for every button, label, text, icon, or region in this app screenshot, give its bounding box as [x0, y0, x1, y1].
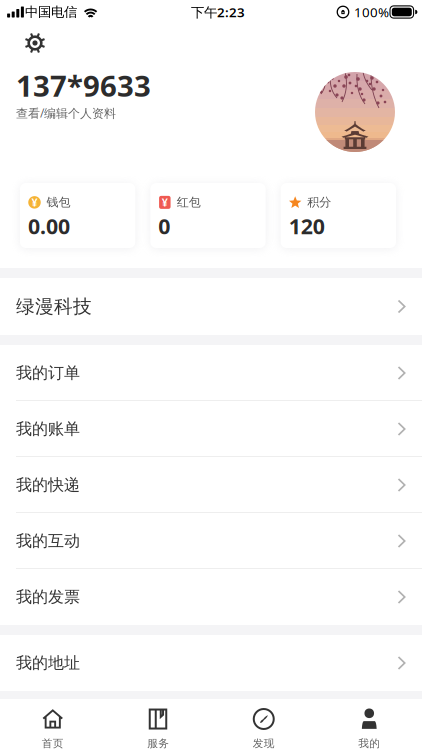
button[interactable]: 我的互动 — [0, 513, 422, 569]
button[interactable]: 我的地址 — [0, 635, 422, 691]
staticText: 红包 — [177, 195, 201, 210]
staticText: 我的快递 — [16, 475, 80, 495]
staticText: 137*9633 — [16, 66, 151, 105]
staticText: ¥ — [31, 195, 37, 209]
staticText: 下午2:23 — [191, 3, 245, 21]
button[interactable]: 积分 — [281, 183, 396, 248]
button[interactable]: 绿漫科技 — [0, 278, 422, 335]
staticText: 0.00 — [28, 212, 70, 240]
staticText: 0 — [158, 212, 170, 240]
staticText: 服务 — [147, 737, 169, 750]
staticText: 钱包 — [46, 195, 70, 210]
button[interactable]: 我的 — [316, 699, 422, 750]
staticText: 首页 — [42, 737, 64, 750]
staticText: 我的订单 — [16, 363, 80, 383]
button[interactable]: 首页 — [0, 699, 105, 750]
staticText: 中国电信 — [25, 4, 77, 20]
button[interactable]: 服务 — [105, 699, 211, 750]
staticText: 查看/编辑个人资料 — [16, 105, 116, 121]
staticText: ¥ — [162, 195, 168, 209]
staticText: 我的 — [358, 737, 380, 750]
button[interactable]: 我的发票 — [0, 569, 422, 625]
staticText: 我的账单 — [16, 419, 80, 439]
staticText: 120 — [289, 212, 325, 240]
button[interactable]: Profile photo — [315, 72, 395, 152]
button[interactable]: 我的账单 — [0, 401, 422, 457]
button[interactable]: ¥ — [150, 183, 266, 248]
button[interactable]: Settings — [0, 24, 56, 60]
staticText: 100% — [354, 3, 389, 21]
staticText: 我的发票 — [16, 587, 80, 607]
staticText: 我的互动 — [16, 531, 80, 551]
button[interactable]: 我的快递 — [0, 457, 422, 513]
staticText: 积分 — [307, 195, 331, 210]
staticText: 发现 — [253, 737, 275, 750]
button[interactable]: 我的订单 — [0, 345, 422, 401]
button[interactable]: ¥ — [20, 183, 135, 248]
button[interactable]: 发现 — [211, 699, 316, 750]
staticText: 绿漫科技 — [16, 295, 92, 318]
staticText: 我的地址 — [16, 653, 80, 673]
